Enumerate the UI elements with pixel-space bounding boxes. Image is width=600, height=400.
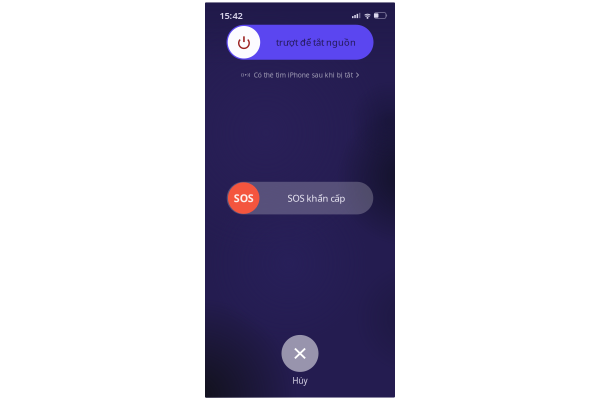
staticText: Hủy (292, 375, 307, 386)
staticText: SOS (234, 191, 254, 205)
button[interactable]: Hủy (281, 335, 318, 386)
button[interactable]: trượt để tắt nguồn (226, 25, 373, 60)
staticText: Có thể tìm iPhone sau khi bị tắt (254, 71, 353, 79)
staticText: trượt để tắt nguồn (276, 36, 356, 48)
button[interactable]: SOS khẩn cấp (227, 182, 373, 214)
button[interactable]: Có thể tìm iPhone sau khi bị tắt (241, 70, 359, 80)
staticText: SOS khẩn cấp (287, 192, 345, 204)
staticText: 15:42 (219, 9, 242, 22)
